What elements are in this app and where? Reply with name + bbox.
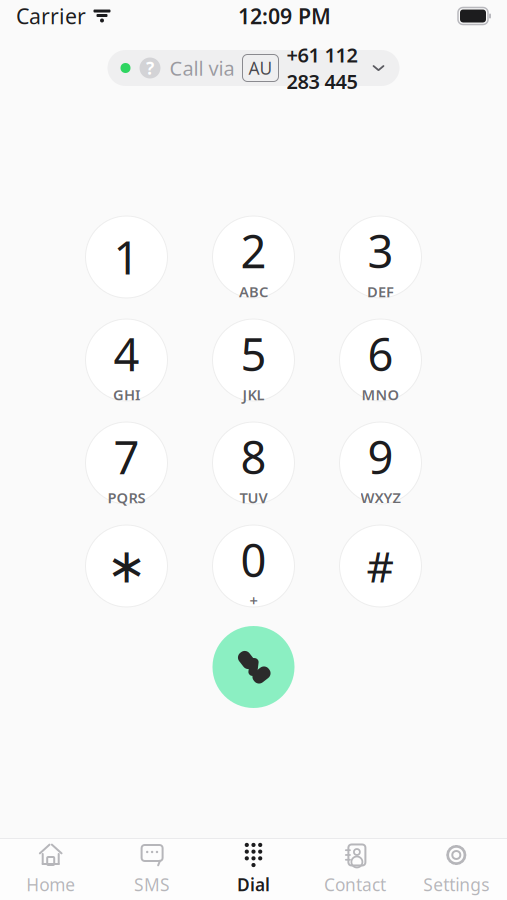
button[interactable]: 8 — [212, 422, 294, 504]
staticText: JKL — [242, 385, 264, 404]
staticText: Call via — [169, 55, 234, 81]
staticText: GHI — [113, 385, 140, 404]
staticText: 1 — [113, 227, 139, 287]
button[interactable]: Contact — [304, 839, 406, 900]
staticText: 3 — [367, 221, 393, 281]
button[interactable]: ∗ — [85, 525, 167, 607]
staticText: MNO — [361, 385, 399, 404]
staticText: # — [366, 538, 394, 594]
staticText: TUV — [239, 488, 267, 507]
staticText: AU — [248, 56, 272, 79]
staticText: DEF — [367, 282, 394, 301]
staticText: ∗ — [106, 539, 146, 593]
button[interactable]: 9 — [339, 422, 421, 504]
staticText: 0 — [240, 530, 266, 590]
staticText: PQRS — [107, 488, 145, 507]
staticText: 12:09 PM — [238, 2, 331, 30]
button[interactable]: 1 — [85, 216, 167, 298]
button[interactable]: 7 — [85, 422, 167, 504]
button[interactable]: ? — [107, 50, 399, 86]
button[interactable]: # — [339, 525, 421, 607]
staticText: Contact — [324, 873, 386, 896]
button[interactable]: Dial — [203, 839, 304, 900]
button[interactable]: 4 — [85, 319, 167, 401]
staticText: WXYZ — [360, 488, 400, 507]
staticText: 9 — [367, 427, 393, 487]
staticText: SMS — [134, 873, 170, 896]
button[interactable]: 2 — [212, 216, 294, 298]
button[interactable]: Call — [212, 626, 294, 708]
button[interactable]: SMS — [101, 839, 203, 900]
staticText: 5 — [240, 324, 266, 384]
staticText: 8 — [240, 427, 266, 487]
staticText: Settings — [423, 873, 489, 896]
staticText: + — [249, 591, 257, 610]
staticText: 6 — [367, 324, 393, 384]
staticText: 4 — [113, 324, 139, 384]
staticText: 7 — [113, 427, 139, 487]
button[interactable]: Settings — [406, 839, 507, 900]
staticText: ? — [146, 56, 154, 79]
button[interactable]: Home — [0, 839, 101, 900]
button[interactable]: 5 — [212, 319, 294, 401]
staticText: 2 — [240, 221, 266, 281]
staticText: +61 112 283 445 — [286, 41, 357, 94]
button[interactable]: 0 — [212, 525, 294, 607]
button[interactable]: 6 — [339, 319, 421, 401]
staticText: Dial — [237, 873, 270, 896]
staticText: Home — [26, 873, 75, 896]
staticText: Carrier — [16, 2, 86, 30]
button[interactable]: 3 — [339, 216, 421, 298]
staticText: ABC — [239, 282, 268, 301]
